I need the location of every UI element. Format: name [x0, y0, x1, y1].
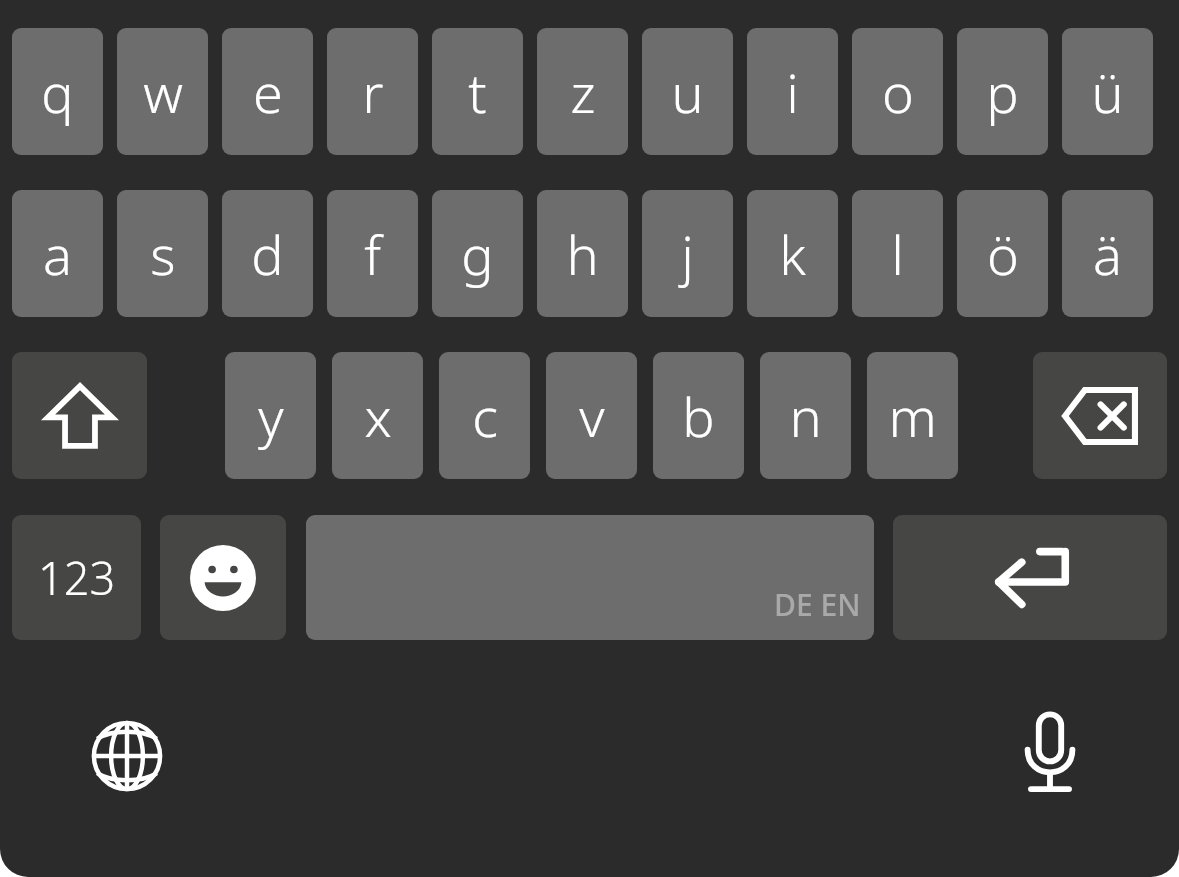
- staticText: o: [882, 55, 914, 129]
- staticText: DE EN: [774, 584, 861, 625]
- staticText: k: [779, 217, 806, 291]
- button[interactable]: g: [432, 190, 523, 317]
- button[interactable]: 123: [12, 515, 141, 640]
- button[interactable]: h: [537, 190, 628, 317]
- staticText: u: [671, 55, 704, 129]
- button[interactable]: ä: [1062, 190, 1153, 317]
- staticText: g: [461, 217, 494, 291]
- button[interactable]: p: [957, 28, 1048, 155]
- staticText: q: [41, 55, 74, 129]
- staticText: t: [468, 55, 487, 129]
- staticText: h: [566, 217, 599, 291]
- staticText: m: [888, 379, 937, 453]
- button[interactable]: l: [852, 190, 943, 317]
- staticText: v: [579, 379, 605, 453]
- button[interactable]: v: [546, 352, 637, 479]
- staticText: e: [253, 55, 283, 129]
- staticText: ä: [1093, 217, 1122, 291]
- staticText: ü: [1091, 55, 1124, 129]
- button[interactable]: e: [222, 28, 313, 155]
- button[interactable]: s: [117, 190, 208, 317]
- staticText: 123: [38, 547, 116, 608]
- staticText: d: [251, 217, 284, 291]
- button[interactable]: a: [12, 190, 103, 317]
- button[interactable]: f: [327, 190, 418, 317]
- staticText: x: [364, 379, 392, 453]
- staticText: y: [258, 379, 284, 453]
- staticText: l: [891, 217, 904, 291]
- button[interactable]: b: [653, 352, 744, 479]
- staticText: ö: [987, 217, 1019, 291]
- button[interactable]: Voice input: [1000, 703, 1100, 803]
- button[interactable]: ö: [957, 190, 1048, 317]
- staticText: a: [43, 217, 72, 291]
- staticText: b: [682, 379, 715, 453]
- staticText: r: [362, 55, 384, 129]
- button[interactable]: Change language: [77, 706, 177, 806]
- button[interactable]: Enter: [893, 515, 1167, 640]
- button[interactable]: j: [642, 190, 733, 317]
- button[interactable]: Shift: [12, 352, 147, 479]
- staticText: i: [786, 55, 799, 129]
- button[interactable]: r: [327, 28, 418, 155]
- button[interactable]: n: [760, 352, 851, 479]
- button[interactable]: Emoji: [160, 515, 286, 640]
- button[interactable]: k: [747, 190, 838, 317]
- staticText: j: [681, 217, 694, 291]
- button[interactable]: Backspace: [1033, 352, 1167, 479]
- staticText: f: [364, 217, 381, 291]
- button[interactable]: i: [747, 28, 838, 155]
- button[interactable]: c: [439, 352, 530, 479]
- staticText: s: [150, 217, 176, 291]
- button[interactable]: m: [867, 352, 958, 479]
- button[interactable]: o: [852, 28, 943, 155]
- button[interactable]: t: [432, 28, 523, 155]
- button[interactable]: q: [12, 28, 103, 155]
- button[interactable]: y: [225, 352, 316, 479]
- button[interactable]: z: [537, 28, 628, 155]
- button[interactable]: ü: [1062, 28, 1153, 155]
- staticText: n: [789, 379, 822, 453]
- button[interactable]: Space: [306, 515, 874, 640]
- staticText: p: [986, 55, 1019, 129]
- button[interactable]: d: [222, 190, 313, 317]
- button[interactable]: u: [642, 28, 733, 155]
- button[interactable]: w: [117, 28, 208, 155]
- button[interactable]: x: [332, 352, 423, 479]
- staticText: z: [570, 55, 596, 129]
- staticText: w: [143, 55, 183, 129]
- staticText: c: [472, 379, 498, 453]
